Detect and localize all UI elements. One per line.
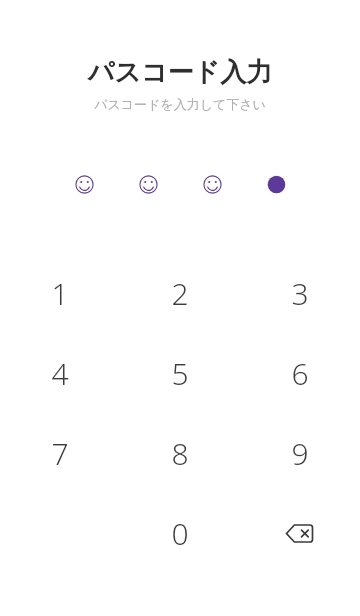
button[interactable]: 5 xyxy=(120,333,240,413)
staticText: パスコードを入力して下さい xyxy=(0,96,360,112)
button[interactable]: 2 xyxy=(120,253,240,333)
staticText: 8 xyxy=(171,433,189,474)
staticText: 4 xyxy=(51,353,69,394)
staticText: 2 xyxy=(171,273,189,314)
staticText: 5 xyxy=(171,353,189,394)
staticText: パスコード入力 xyxy=(0,56,360,89)
staticText: 9 xyxy=(291,433,309,474)
staticText: 0 xyxy=(171,513,189,554)
button[interactable]: 4 xyxy=(0,333,120,413)
staticText: 1 xyxy=(51,273,69,314)
button[interactable]: 3 xyxy=(240,253,360,333)
button[interactable]: 6 xyxy=(240,333,360,413)
button[interactable]: 9 xyxy=(240,413,360,493)
button[interactable]: Backspace xyxy=(240,493,360,573)
button[interactable]: 0 xyxy=(120,493,240,573)
staticText: 6 xyxy=(291,353,309,394)
button[interactable]: 8 xyxy=(120,413,240,493)
staticText: 7 xyxy=(51,433,69,474)
staticText: 3 xyxy=(291,273,309,314)
button[interactable]: 1 xyxy=(0,253,120,333)
button[interactable]: 7 xyxy=(0,413,120,493)
